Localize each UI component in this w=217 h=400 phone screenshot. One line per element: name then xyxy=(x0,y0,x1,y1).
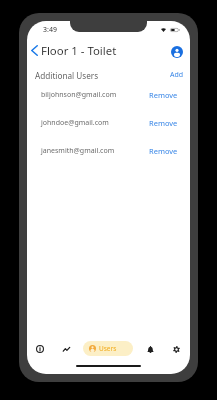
button[interactable]: Info xyxy=(28,336,52,362)
staticText: Remove xyxy=(149,118,178,128)
button[interactable]: Analytics xyxy=(54,336,78,362)
staticText: janesmith@gmail.com xyxy=(41,146,115,156)
staticText: biljohnson@gmail.com xyxy=(41,90,117,100)
button[interactable]: Remove xyxy=(149,118,178,128)
staticText: johndoe@gmail.com xyxy=(41,118,109,128)
staticText: Add xyxy=(170,70,184,80)
button[interactable]: Account xyxy=(169,44,184,59)
staticText: Users xyxy=(99,344,117,353)
button[interactable]: johndoe@gmail.com xyxy=(27,109,190,137)
staticText: Floor 1 - Toilet xyxy=(41,43,117,59)
button[interactable]: janesmith@gmail.com xyxy=(27,137,190,165)
button[interactable]: Notifications xyxy=(138,336,162,362)
button[interactable]: Floor 1 - Toilet xyxy=(27,38,117,64)
button[interactable]: Add xyxy=(170,70,184,80)
button[interactable]: Remove xyxy=(149,90,178,100)
button[interactable]: Users xyxy=(83,341,133,356)
button[interactable]: biljohnson@gmail.com xyxy=(27,81,190,109)
staticText: Additional Users xyxy=(35,70,99,81)
staticText: Remove xyxy=(149,90,178,100)
staticText: Remove xyxy=(149,146,178,156)
button[interactable]: Settings xyxy=(164,336,188,362)
button[interactable]: Remove xyxy=(149,146,178,156)
staticText: 3:49 xyxy=(43,25,57,35)
